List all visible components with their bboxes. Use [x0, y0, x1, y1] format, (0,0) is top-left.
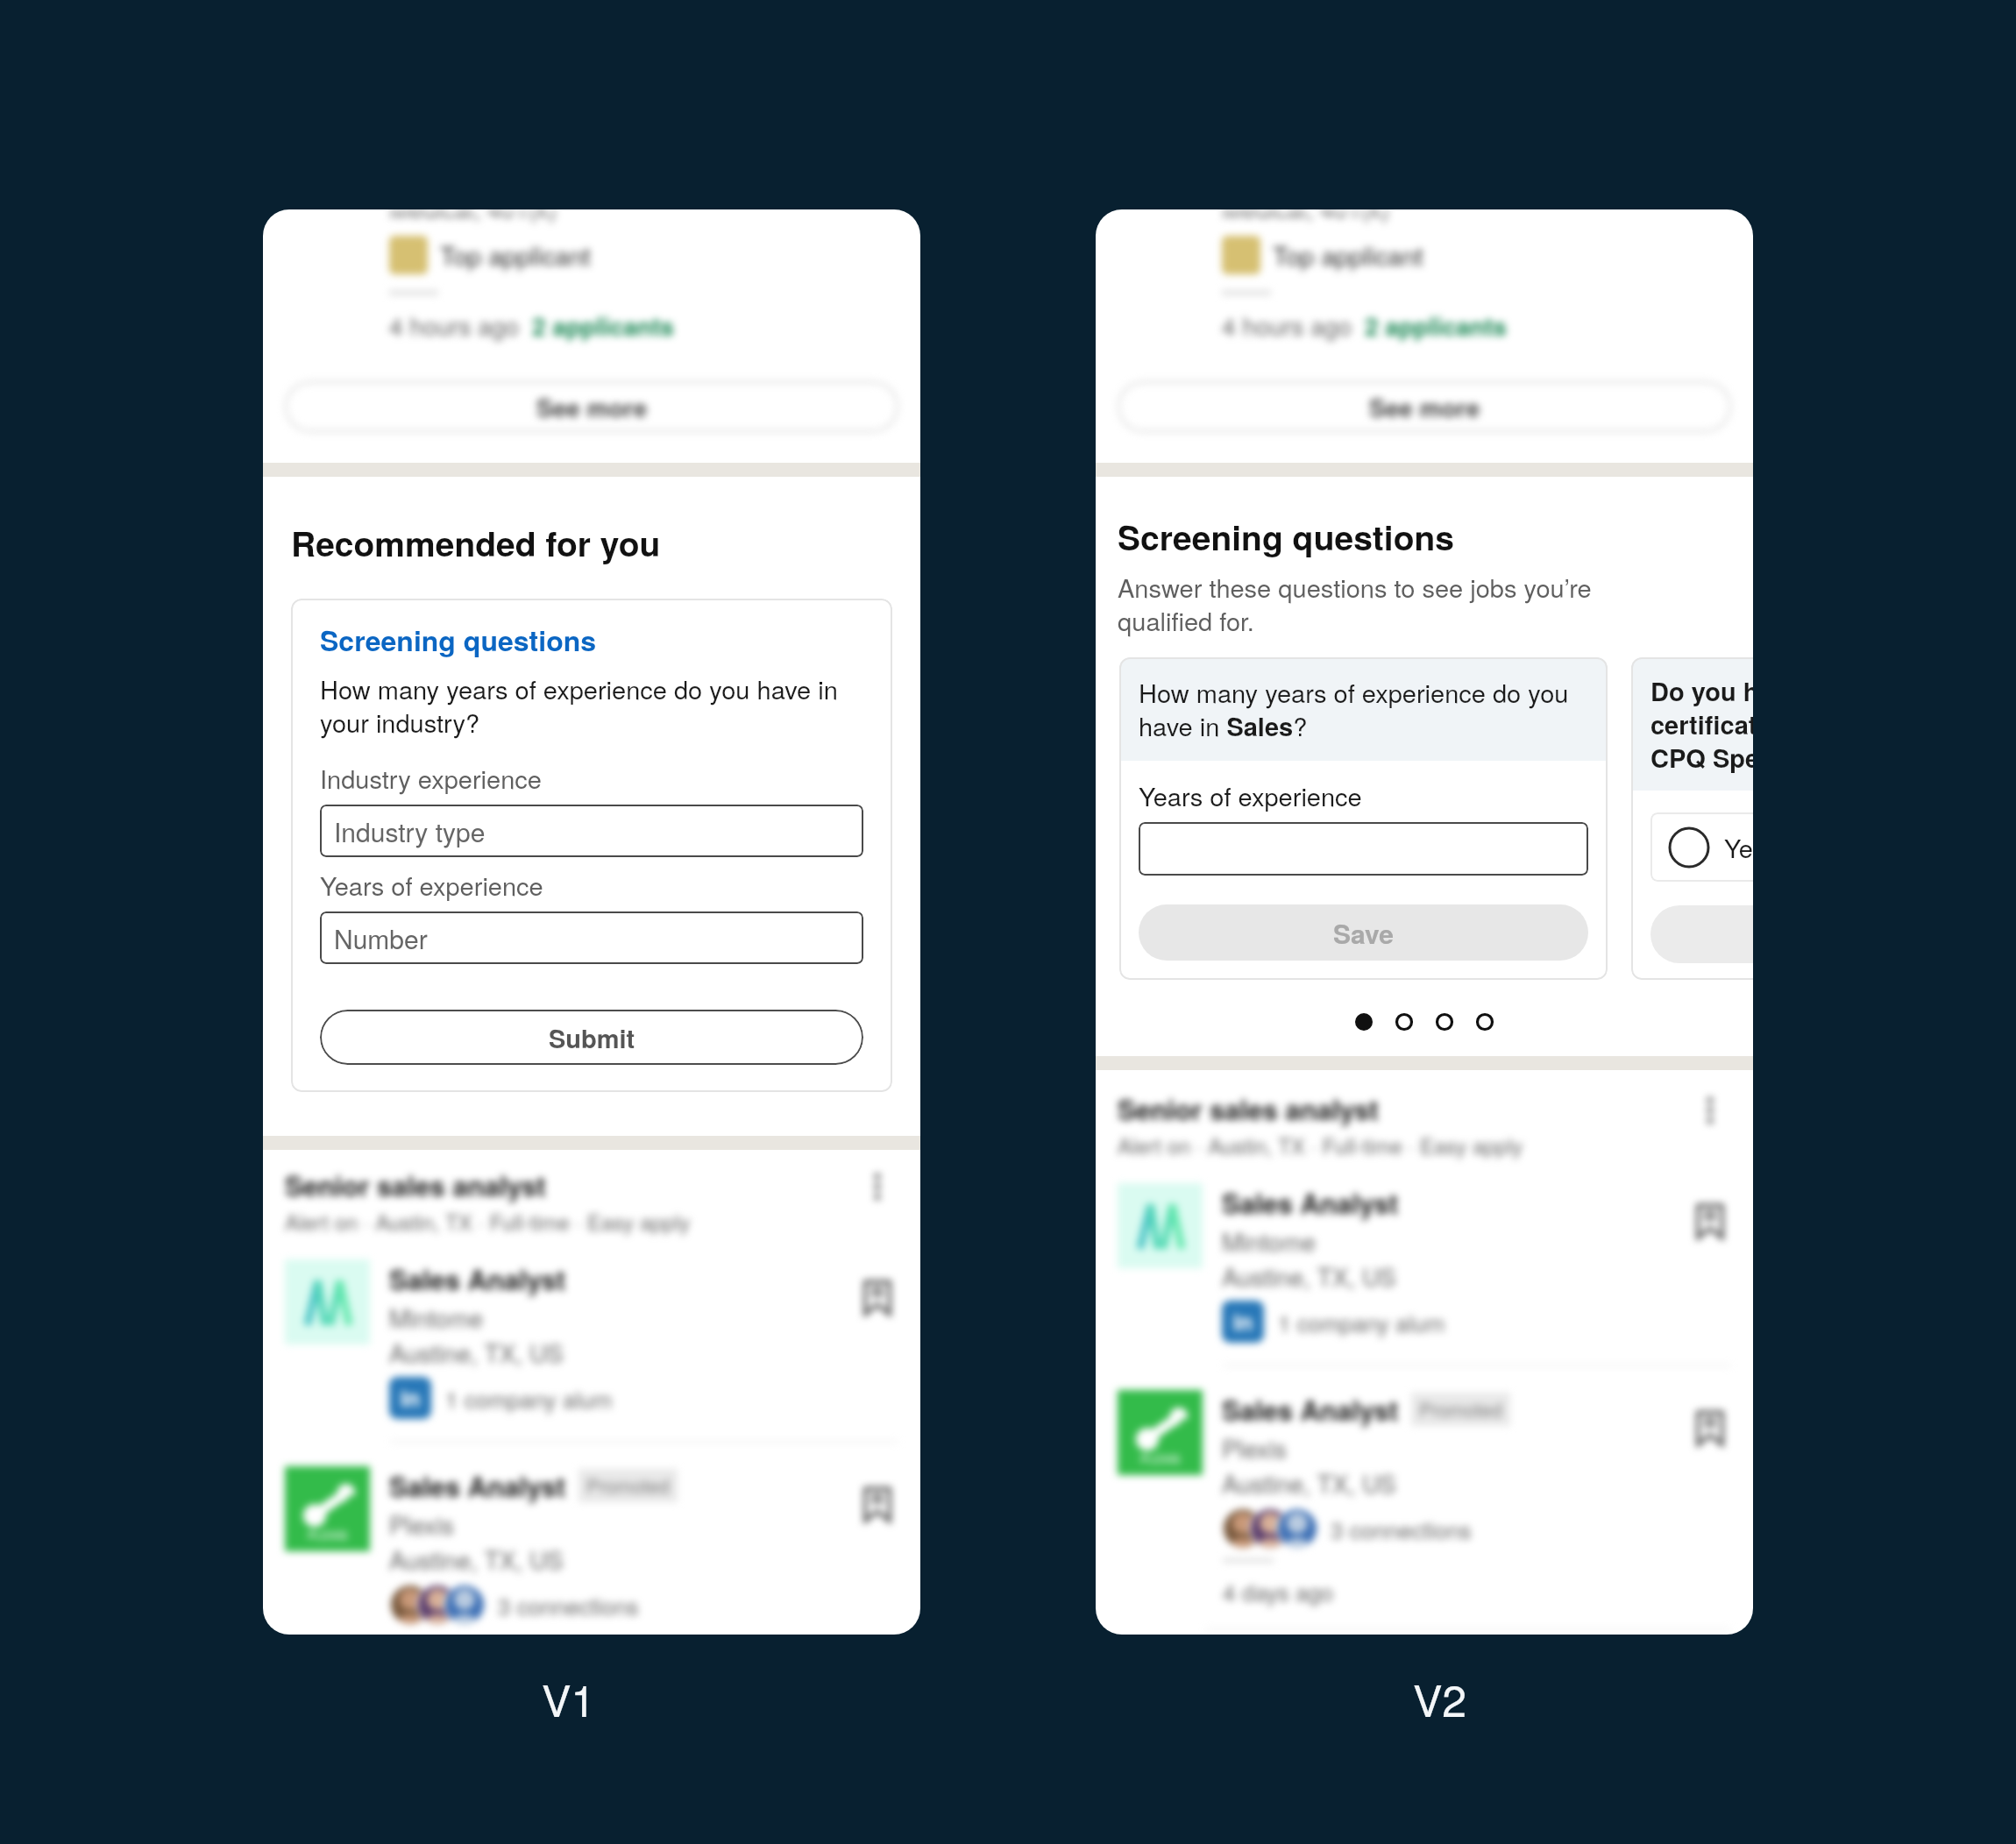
staticText: Sales Analyst — [389, 1466, 566, 1505]
staticText: Plexis — [389, 1507, 454, 1542]
staticText: Recommended for you — [291, 518, 661, 567]
staticText: Top applicant — [1273, 237, 1423, 273]
button[interactable]: Industry type — [320, 805, 863, 857]
button[interactable]: Number — [320, 911, 863, 964]
staticText: 2 applicants — [532, 308, 674, 343]
staticText: 3 connections — [498, 1589, 639, 1621]
button[interactable]: More options — [1689, 1089, 1731, 1131]
staticText: Plexis — [1222, 1430, 1287, 1465]
button[interactable]: Save job — [1689, 1408, 1731, 1450]
button[interactable]: Yes — [1650, 812, 1753, 882]
button[interactable]: Save job — [1689, 1201, 1731, 1243]
staticText: Austine, TX, US — [1222, 1465, 1396, 1500]
staticText: 4 hours ago — [1222, 308, 1352, 343]
staticText: 4 days ago — [1223, 1575, 1334, 1607]
staticText: 1 company alum — [445, 1382, 613, 1415]
button[interactable]: See more — [285, 381, 898, 432]
staticText: Industry type — [334, 812, 486, 850]
button[interactable]: Go to question 2 — [1395, 1012, 1414, 1032]
button[interactable]: Screening questions — [320, 620, 597, 660]
button[interactable]: Submit — [320, 1010, 863, 1065]
staticText: See more — [536, 389, 648, 424]
button[interactable] — [1139, 822, 1588, 876]
staticText: 1 company alum — [1278, 1306, 1445, 1338]
staticText: 3 connections — [1331, 1513, 1472, 1545]
button[interactable]: More options — [856, 1166, 898, 1208]
staticText: Mintome — [389, 1300, 484, 1335]
staticText: Answer these questions to see jobs you’r… — [1118, 569, 1652, 639]
staticText: Austine, TX, US — [389, 1542, 564, 1577]
staticText: Sales Analyst — [389, 1259, 566, 1298]
button[interactable]: See more — [1118, 381, 1731, 432]
staticText: Austine, TX, US — [1222, 1259, 1396, 1294]
staticText: PLEXIS — [308, 1527, 348, 1543]
staticText: 4 hours ago — [389, 308, 520, 343]
button[interactable] — [1650, 905, 1753, 963]
staticText: in — [401, 1382, 421, 1414]
button[interactable]: Save job — [856, 1277, 898, 1319]
button[interactable]: Go to question 4 — [1475, 1012, 1494, 1032]
button[interactable]: Sales Analyst — [1118, 1175, 1731, 1365]
staticText: V1 — [542, 1667, 596, 1730]
button[interactable]: Save job — [856, 1484, 898, 1526]
button[interactable]: Go to question 1 — [1354, 1012, 1374, 1032]
staticText: Number — [334, 919, 428, 957]
button[interactable]: PLEXIS — [285, 1443, 898, 1635]
staticText: Alert on · Austin, TX · Full-time · Easy… — [1118, 1130, 1523, 1160]
staticText: Do you have a certification in CPQ Speci… — [1650, 672, 1753, 776]
staticText: Mintome — [1222, 1223, 1317, 1259]
staticText: See more — [1369, 389, 1480, 424]
staticText: How many years of experience do you have… — [320, 670, 863, 741]
staticText: Yes — [1724, 829, 1753, 866]
button[interactable]: Sales Analyst — [285, 1252, 898, 1441]
staticText: Years of experience — [320, 867, 543, 904]
staticText: Save — [1333, 914, 1394, 952]
staticText: Industry experience — [320, 760, 542, 797]
staticText: in — [1233, 1306, 1253, 1337]
button[interactable]: Save — [1139, 904, 1588, 961]
staticText: Screening questions — [1118, 512, 1454, 561]
staticText: 2 applicants — [1365, 308, 1507, 343]
staticText: Medical, 401(k) — [389, 209, 557, 225]
staticText: PLEXIS — [1140, 1450, 1181, 1467]
staticText: Promoted — [586, 1472, 670, 1500]
button[interactable]: Go to question 3 — [1435, 1012, 1454, 1032]
staticText: Promoted — [1419, 1395, 1502, 1423]
staticText: Top applicant — [440, 237, 591, 273]
staticText: Submit — [549, 1019, 635, 1056]
button[interactable]: PLEXIS — [1118, 1366, 1731, 1558]
staticText: Senior sales analyst — [285, 1166, 546, 1204]
staticText: Years of experience — [1139, 777, 1362, 814]
staticText: Alert on · Austin, TX · Full-time · Easy… — [285, 1206, 691, 1236]
staticText: Medical, 401(k) — [1222, 209, 1390, 225]
staticText: Austine, TX, US — [389, 1335, 564, 1370]
staticText: V2 — [1413, 1667, 1467, 1730]
staticText: Senior sales analyst — [1118, 1089, 1379, 1128]
staticText: Sales Analyst — [1222, 1183, 1399, 1222]
staticText: Sales Analyst — [1222, 1390, 1399, 1429]
staticText: How many years of experience do you have… — [1139, 674, 1588, 744]
